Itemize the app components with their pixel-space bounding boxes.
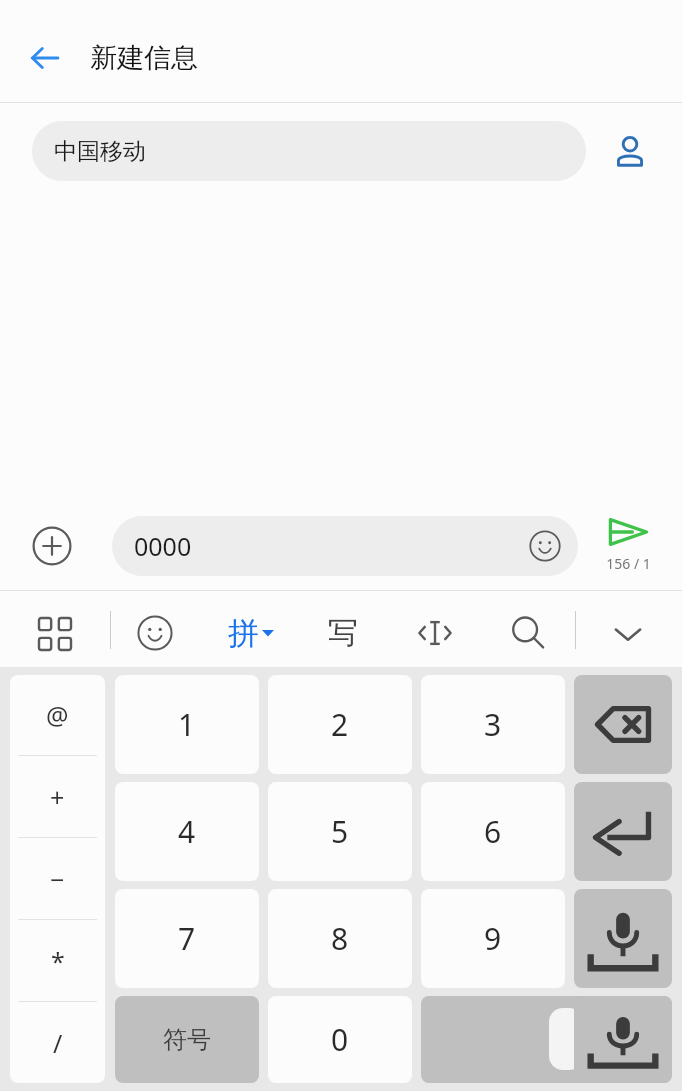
button[interactable]: 2 [268, 675, 412, 774]
button[interactable]: 4 [115, 782, 259, 881]
button[interactable]: 拼 [228, 604, 274, 662]
staticText: 0 [331, 1019, 349, 1060]
staticText: 写 [328, 614, 358, 652]
staticText: 1 [178, 704, 196, 745]
staticText: 6 [484, 811, 502, 852]
button[interactable]: + [10, 756, 105, 837]
button[interactable]: 写 [314, 604, 372, 662]
button[interactable]: 0 [268, 996, 412, 1083]
button[interactable]: Send [586, 510, 670, 573]
button[interactable]: Keyboard layouts [25, 604, 85, 664]
button[interactable]: Voice input [574, 889, 672, 988]
staticText: 中国移动 [54, 137, 146, 166]
button[interactable]: @ [10, 675, 105, 755]
staticText: 0000 [134, 529, 192, 563]
button[interactable]: 1 [115, 675, 259, 774]
button[interactable]: Contacts [600, 121, 660, 181]
button[interactable]: * [10, 920, 105, 1001]
button[interactable]: Space [421, 996, 672, 1083]
button[interactable]: 6 [421, 782, 565, 881]
button[interactable]: 8 [268, 889, 412, 988]
button[interactable]: 7 [115, 889, 259, 988]
staticText: + [50, 780, 65, 814]
button[interactable]: Hide keyboard [598, 604, 658, 664]
button[interactable]: Add attachment [22, 516, 82, 576]
staticText: 156 / 1 [606, 554, 651, 573]
staticText: 新建信息 [90, 41, 198, 75]
staticText: / [53, 1026, 63, 1060]
staticText: 9 [484, 918, 502, 959]
button[interactable]: Cursor control [406, 604, 464, 662]
button[interactable]: Back [0, 14, 90, 102]
button[interactable]: Search [499, 604, 557, 662]
staticText: 4 [178, 811, 196, 852]
staticText: − [50, 862, 65, 896]
button[interactable]: − [10, 838, 105, 919]
staticText: 2 [331, 704, 349, 745]
button[interactable]: Emoji [526, 527, 564, 565]
staticText: 5 [331, 811, 349, 852]
button[interactable]: Emoji [126, 604, 184, 662]
staticText: * [51, 944, 65, 978]
button[interactable]: 3 [421, 675, 565, 774]
button[interactable]: 符号 [115, 996, 259, 1083]
button[interactable]: 0000 [112, 516, 578, 576]
button[interactable]: / [10, 1002, 105, 1083]
staticText: 3 [484, 704, 502, 745]
staticText: 拼 [228, 614, 259, 653]
button[interactable]: Voice input [574, 996, 672, 1083]
staticText: 7 [178, 918, 196, 959]
staticText: @ [46, 698, 69, 732]
button[interactable]: 5 [268, 782, 412, 881]
button[interactable]: 9 [421, 889, 565, 988]
button[interactable]: Enter [574, 782, 672, 881]
staticText: 8 [331, 918, 349, 959]
button[interactable]: 中国移动 [32, 121, 586, 181]
staticText: 符号 [163, 1025, 211, 1055]
button[interactable]: Backspace [574, 675, 672, 774]
